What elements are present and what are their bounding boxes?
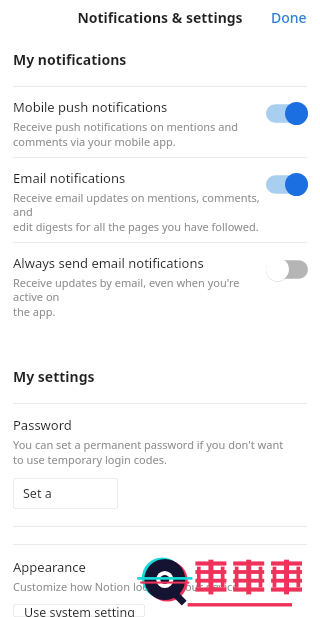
staticText: Appearance <box>13 558 86 576</box>
staticText: Set a password <box>23 485 108 502</box>
staticText: You can set a permanent password if you … <box>13 437 284 452</box>
staticText: Mobile push notifications <box>13 98 168 116</box>
staticText: My notifications <box>13 50 127 69</box>
staticText: Done <box>271 8 307 27</box>
button[interactable]: Set a password <box>13 478 118 509</box>
button[interactable]: Mobile push notifications <box>0 87 320 157</box>
staticText: Use system setting <box>24 604 135 617</box>
staticText: Always send email notifications <box>13 254 204 272</box>
staticText: Email notifications <box>13 169 126 187</box>
button[interactable]: Email notifications <box>0 158 320 242</box>
button[interactable]: Done <box>258 2 320 33</box>
staticText: Notifications & settings <box>77 8 243 27</box>
staticText: Receive email updates on mentions, comme… <box>13 190 260 219</box>
button[interactable]: Use system setting <box>13 604 145 617</box>
staticText: My settings <box>13 367 95 386</box>
staticText: Customize how Notion looks on your devic… <box>13 579 242 594</box>
staticText: the app. <box>13 304 56 319</box>
staticText: edit digests for all the pages you have … <box>13 219 259 234</box>
staticText: Receive updates by email, even when you'… <box>13 275 260 304</box>
staticText: Receive push notifications on mentions a… <box>13 119 238 134</box>
staticText: to use temporary login codes. <box>13 452 167 467</box>
staticText: comments via your mobile app. <box>13 134 176 149</box>
button[interactable]: Always send email notifications toggle <box>266 258 308 281</box>
button[interactable]: Always send email notifications <box>0 243 320 327</box>
staticText: Password <box>13 416 72 434</box>
button[interactable]: Email notifications toggle <box>266 173 308 196</box>
button[interactable]: Mobile push notifications toggle <box>266 102 308 125</box>
